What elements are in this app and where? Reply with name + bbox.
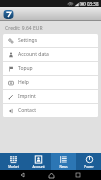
button[interactable]: Market [0,153,26,170]
staticText: Market [8,165,19,169]
button[interactable]: Power [76,153,101,170]
staticText: Contact [18,107,37,114]
button[interactable]: Topup [3,62,98,75]
staticText: Settings [18,37,38,44]
button[interactable]: Help [3,76,98,89]
staticText: News [59,165,68,169]
staticText: Account data [18,51,49,58]
staticText: 03:38 [87,1,99,7]
staticText: Power [84,165,94,169]
button[interactable]: Settings [3,34,98,47]
staticText: Topup [18,65,33,72]
button[interactable]: Account data [3,48,98,61]
button[interactable]: Account [26,153,51,170]
button[interactable]: Home [46,170,56,180]
button[interactable]: Recents [73,170,83,180]
button[interactable]: Contact [3,104,98,117]
staticText: Help [18,79,29,86]
button[interactable]: News [51,153,76,170]
staticText: Account [32,165,45,169]
button[interactable]: App logo [3,9,14,20]
button[interactable]: Imprint [3,90,98,103]
staticText: Imprint [18,93,36,100]
staticText: Credit: 9.64 EUR [5,25,43,32]
button[interactable]: Back [18,170,28,180]
